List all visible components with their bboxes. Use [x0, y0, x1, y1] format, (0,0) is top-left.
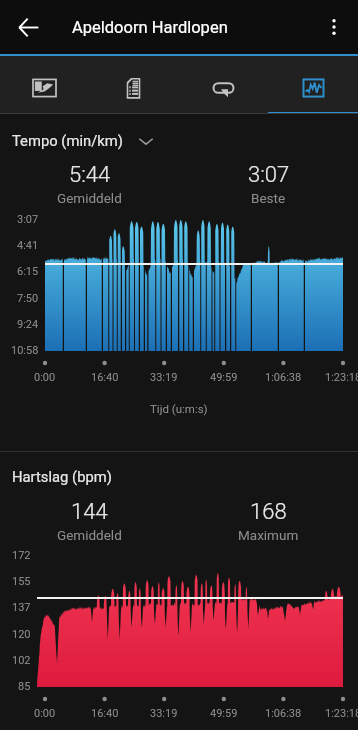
- staticText: 33:19: [150, 371, 178, 384]
- staticText: 7:50: [17, 292, 39, 305]
- staticText: 10:58: [11, 344, 39, 357]
- staticText: 144: [71, 499, 108, 525]
- button[interactable]: More options: [312, 5, 356, 49]
- button[interactable]: Back: [8, 7, 48, 47]
- button[interactable]: Laps: [178, 56, 268, 114]
- staticText: 6:15: [17, 265, 39, 278]
- staticText: 85: [18, 680, 31, 693]
- staticText: 3:07: [248, 162, 290, 188]
- staticText: 16:40: [91, 371, 119, 384]
- staticText: 1:06:38: [265, 707, 302, 720]
- button[interactable]: Charts: [268, 56, 358, 114]
- staticText: 172: [12, 549, 31, 562]
- staticText: 49:59: [210, 371, 238, 384]
- staticText: 5:44: [69, 162, 111, 188]
- staticText: 1:23:18: [325, 371, 358, 384]
- staticText: 16:40: [91, 707, 119, 720]
- staticText: Maximum: [238, 527, 299, 543]
- staticText: 3:07: [17, 213, 39, 226]
- staticText: 33:19: [150, 707, 178, 720]
- staticText: Tijd (u:m:s): [150, 402, 208, 415]
- staticText: 0:00: [34, 707, 56, 720]
- staticText: Beste: [251, 190, 286, 206]
- staticText: 168: [250, 499, 287, 525]
- staticText: 4:41: [17, 239, 39, 252]
- button[interactable]: Hartslag (bpm): [12, 468, 112, 485]
- staticText: Gemiddeld: [57, 527, 122, 543]
- staticText: 49:59: [210, 707, 238, 720]
- staticText: 1:23:18: [325, 707, 358, 720]
- button[interactable]: Tempo (min/km): [12, 132, 154, 149]
- staticText: 1:06:38: [265, 371, 302, 384]
- button[interactable]: Map: [0, 56, 89, 114]
- staticText: 102: [12, 654, 31, 667]
- button[interactable]: Details: [89, 56, 178, 114]
- staticText: Apeldoorn Hardlopen: [72, 18, 228, 37]
- staticText: 9:24: [17, 318, 39, 331]
- staticText: 137: [12, 601, 31, 614]
- staticText: Hartslag (bpm): [12, 468, 112, 485]
- staticText: Gemiddeld: [57, 190, 122, 206]
- staticText: 120: [12, 628, 31, 641]
- staticText: Tempo (min/km): [12, 132, 123, 149]
- staticText: 155: [12, 575, 31, 588]
- staticText: 0:00: [34, 371, 56, 384]
